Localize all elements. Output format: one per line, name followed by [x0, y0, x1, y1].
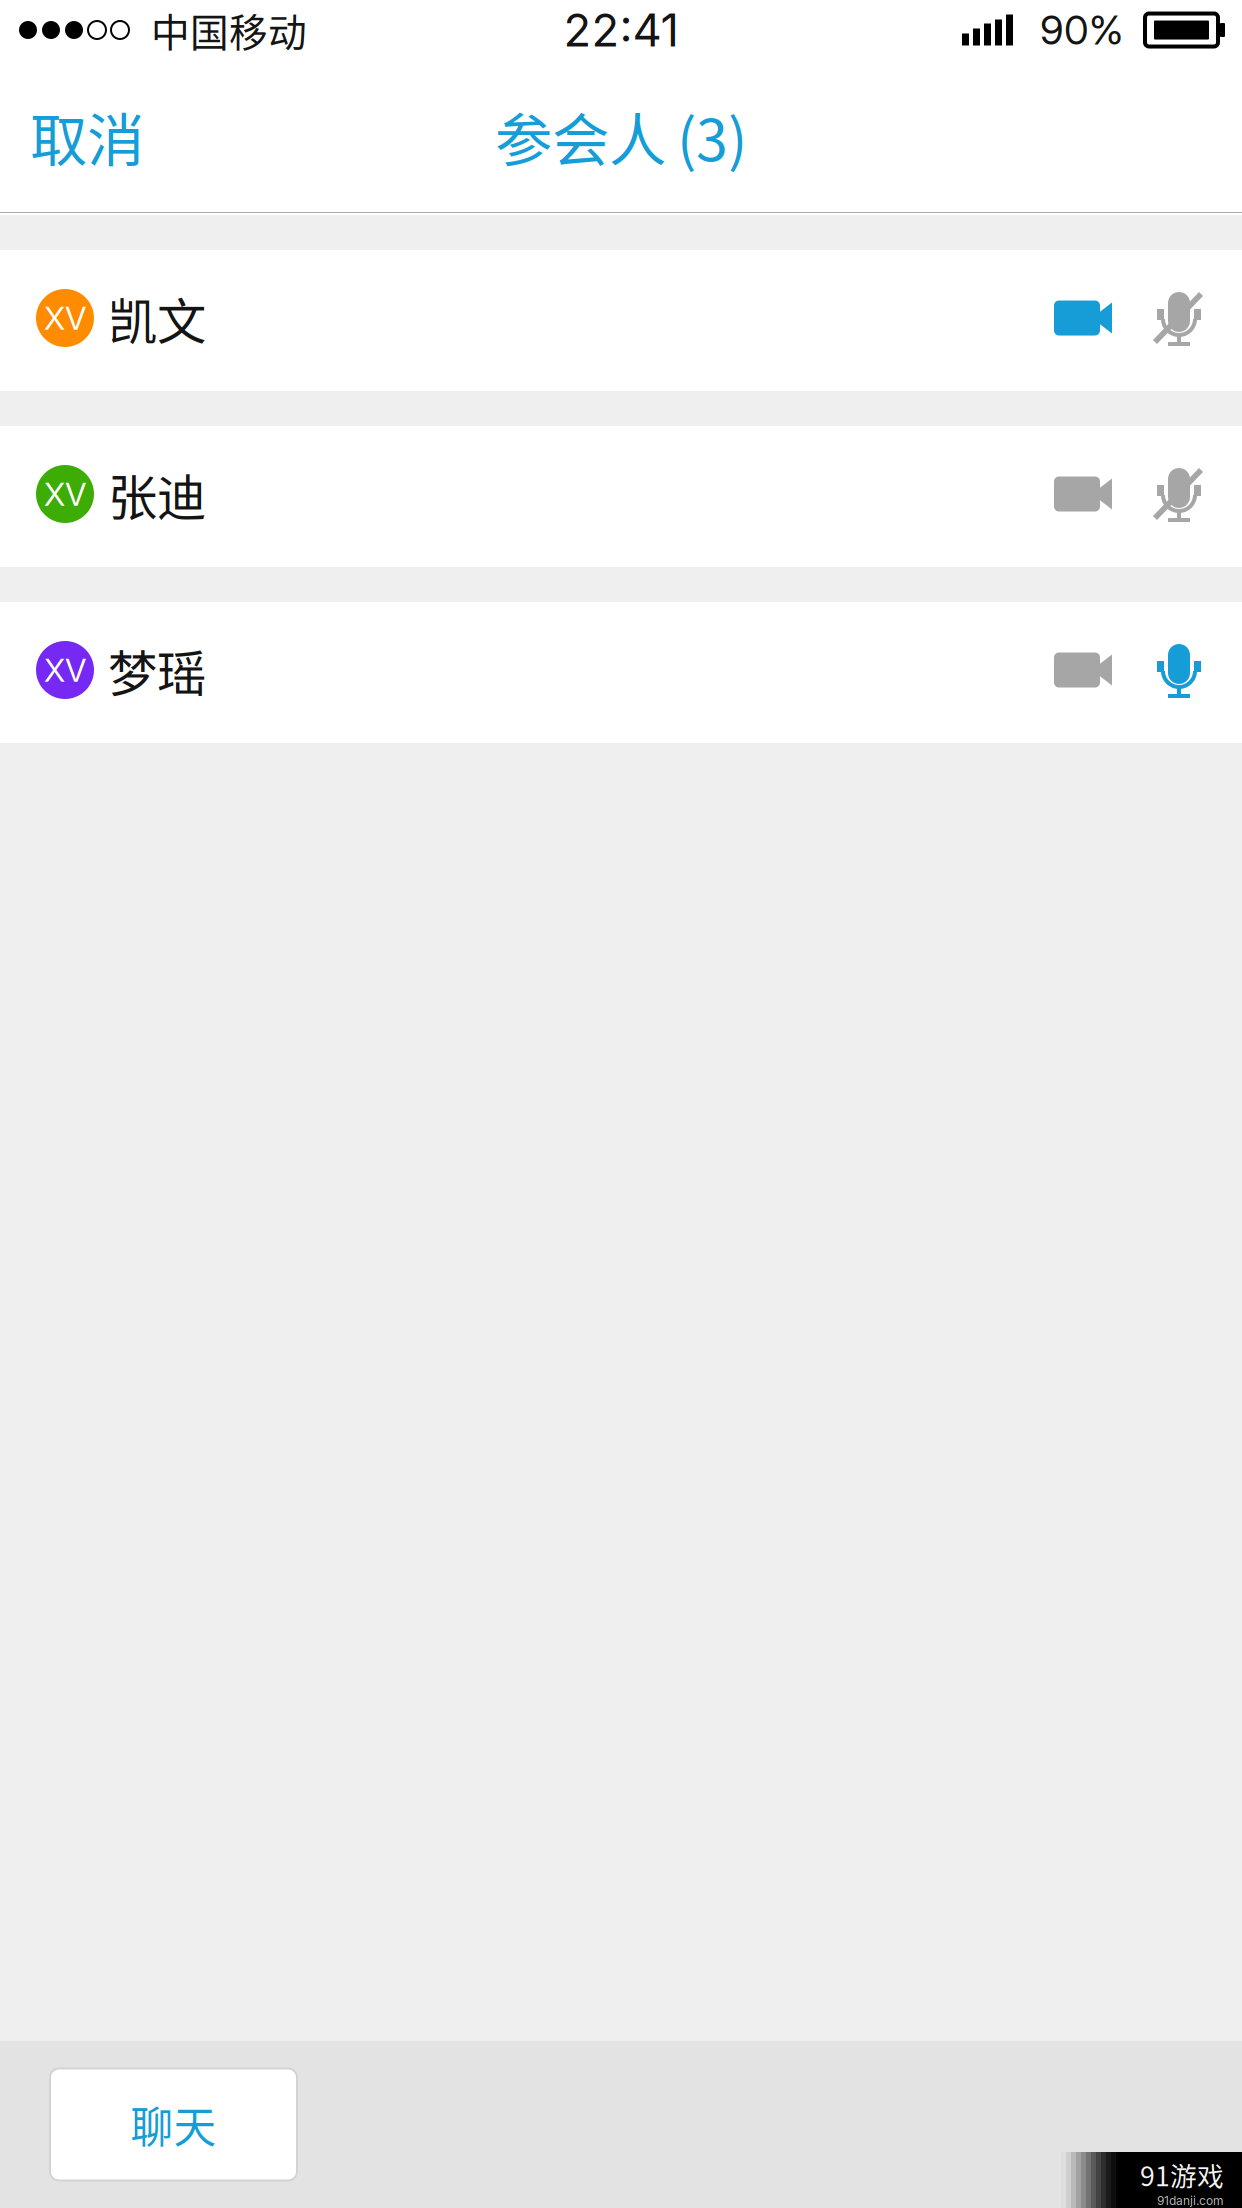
- staticText: 取消: [30, 94, 144, 177]
- button[interactable]: 聊天: [50, 2068, 297, 2180]
- staticText: 梦瑶: [108, 634, 206, 706]
- button[interactable]: 取消静音: [1112, 466, 1203, 522]
- button[interactable]: XV: [0, 426, 1242, 567]
- button[interactable]: 取消: [0, 60, 174, 212]
- staticText: 22:41: [563, 3, 678, 57]
- staticText: 参会人 (3): [495, 94, 747, 177]
- staticText: 张迪: [108, 458, 206, 530]
- staticText: 91danji.com: [1157, 2193, 1224, 2208]
- button[interactable]: 取消静音: [1112, 290, 1203, 346]
- staticText: 91游戏: [1140, 2155, 1224, 2194]
- staticText: 中国移动: [151, 2, 307, 58]
- button[interactable]: 关闭视频: [1054, 300, 1112, 335]
- staticText: 聊天: [130, 2094, 216, 2155]
- staticText: 凯文: [108, 282, 206, 354]
- staticText: XV: [44, 475, 86, 513]
- staticText: 90%: [1040, 6, 1123, 54]
- button[interactable]: 开启视频: [1054, 476, 1112, 511]
- staticText: XV: [44, 651, 86, 689]
- button[interactable]: 静音: [1112, 642, 1203, 698]
- button[interactable]: XV: [0, 602, 1242, 743]
- button[interactable]: 开启视频: [1054, 652, 1112, 687]
- staticText: XV: [44, 299, 86, 337]
- button[interactable]: XV: [0, 250, 1242, 391]
